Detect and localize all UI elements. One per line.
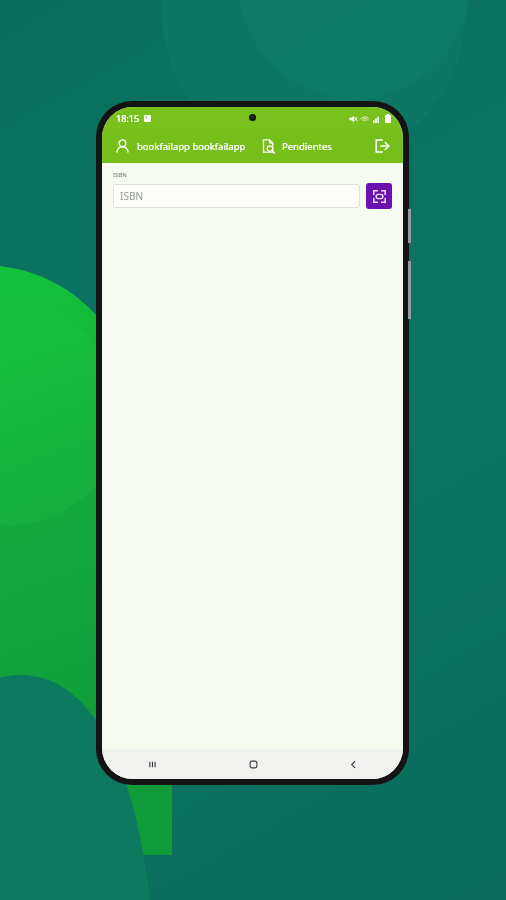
button[interactable]: Recientes bbox=[102, 749, 203, 779]
staticText: 18:15 bbox=[116, 112, 140, 124]
button[interactable]: Inicio bbox=[203, 749, 303, 779]
button[interactable]: Escanear código de barras bbox=[366, 183, 392, 209]
button[interactable]: Cerrar sesión bbox=[371, 135, 393, 157]
staticText: bookfailapp bookfailapp bbox=[137, 140, 246, 153]
staticText: ISBN bbox=[113, 171, 127, 179]
button[interactable]: Pendientes bbox=[258, 135, 334, 157]
staticText: ISBN bbox=[120, 189, 143, 203]
button[interactable]: bookfailapp bookfailapp bbox=[112, 135, 248, 158]
button[interactable]: Atrás bbox=[303, 749, 403, 779]
staticText: Pendientes bbox=[282, 140, 332, 153]
button[interactable]: ISBN bbox=[113, 184, 360, 208]
